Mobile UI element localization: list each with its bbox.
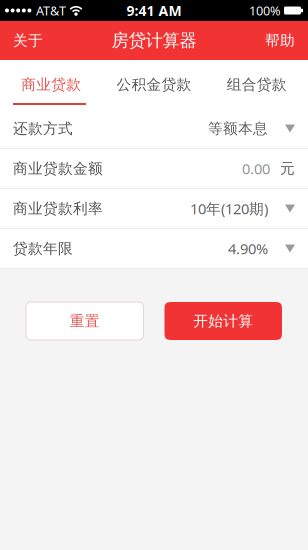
staticText: 贷款年限	[13, 239, 73, 258]
button[interactable]: 公积金贷款	[103, 60, 205, 109]
staticText: 4.90%	[228, 238, 268, 258]
staticText: 组合贷款	[227, 75, 287, 94]
button[interactable]: 关于	[0, 21, 56, 60]
button[interactable]: 组合贷款	[205, 60, 308, 109]
button[interactable]: 商业贷款	[0, 60, 103, 109]
staticText: 重置	[70, 312, 100, 330]
staticText: 还款方式	[13, 119, 73, 138]
staticText: 商业贷款	[21, 75, 81, 94]
staticText: AT&T	[36, 2, 66, 19]
button[interactable]: 贷款年限	[0, 229, 308, 269]
staticText: 100%	[249, 2, 281, 19]
staticText: 开始计算	[193, 312, 253, 330]
button[interactable]: 商业贷款金额	[0, 149, 308, 189]
staticText: 公积金贷款	[116, 75, 191, 94]
button[interactable]: 商业贷款利率	[0, 189, 308, 229]
staticText: 等额本息	[208, 119, 268, 138]
button[interactable]: 还款方式	[0, 109, 308, 149]
staticText: 帮助	[265, 31, 295, 50]
staticText: 0.00	[242, 158, 270, 178]
staticText: 9:41 AM	[126, 1, 181, 20]
staticText: 房贷计算器	[111, 30, 196, 51]
staticText: 元	[280, 159, 295, 178]
button[interactable]: 帮助	[252, 21, 308, 60]
button[interactable]: 重置	[26, 302, 143, 340]
button[interactable]: 开始计算	[164, 302, 282, 340]
staticText: 商业贷款利率	[13, 199, 103, 218]
staticText: 关于	[13, 31, 43, 50]
staticText: 10年(120期)	[190, 198, 268, 218]
staticText: 商业贷款金额	[13, 159, 103, 178]
